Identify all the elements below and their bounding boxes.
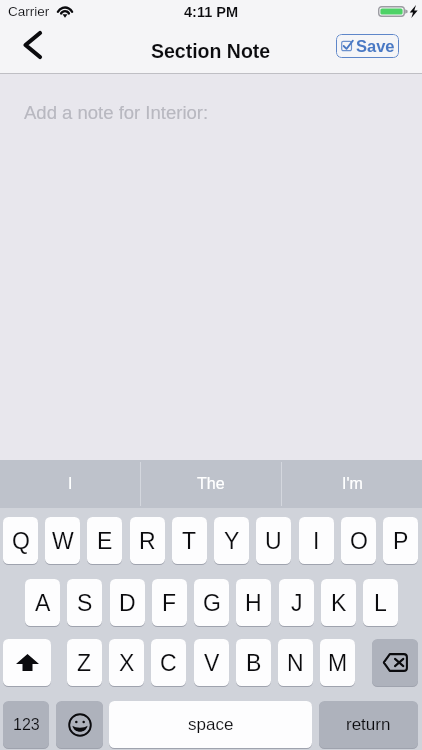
staticText: Add a note for Interior: (24, 102, 209, 123)
button[interactable]: Emoji (56, 701, 103, 749)
button[interactable]: Y (214, 517, 249, 565)
button[interactable]: K (321, 579, 356, 627)
staticText: J (291, 590, 303, 616)
button[interactable]: L (363, 579, 398, 627)
staticText: S (77, 590, 93, 616)
staticText: Save (356, 37, 395, 55)
staticText: C (160, 650, 177, 676)
staticText: D (119, 590, 136, 616)
button[interactable]: P (383, 517, 418, 565)
staticText: T (182, 528, 197, 554)
staticText: Section Note (151, 40, 271, 62)
staticText: space (188, 715, 234, 734)
button[interactable]: I (0, 460, 140, 508)
staticText: W (52, 528, 74, 554)
button[interactable]: A (25, 579, 60, 627)
staticText: Carrier (8, 4, 50, 19)
staticText: A (35, 590, 51, 616)
button[interactable]: B (236, 639, 271, 687)
button[interactable]: M (320, 639, 355, 687)
button[interactable]: U (256, 517, 291, 565)
button[interactable]: S (67, 579, 102, 627)
button[interactable]: N (278, 639, 313, 687)
staticText: 123 (13, 716, 40, 734)
button[interactable]: D (110, 579, 145, 627)
staticText: L (374, 590, 387, 616)
button[interactable]: return (319, 701, 418, 749)
staticText: N (287, 650, 304, 676)
staticText: I (68, 475, 73, 493)
button[interactable]: Shift (3, 639, 51, 687)
button[interactable]: I'm (282, 460, 422, 508)
staticText: V (204, 650, 220, 676)
staticText: Z (77, 650, 92, 676)
button[interactable]: X (109, 639, 144, 687)
staticText: The (197, 475, 225, 493)
button[interactable]: E (87, 517, 122, 565)
button[interactable]: H (236, 579, 271, 627)
staticText: H (245, 590, 262, 616)
button[interactable]: W (45, 517, 80, 565)
staticText: U (265, 528, 282, 554)
button[interactable]: Back (14, 31, 50, 71)
staticText: 4:11 PM (184, 4, 238, 20)
button[interactable]: I (299, 517, 334, 565)
button[interactable]: F (152, 579, 187, 627)
button[interactable]: G (194, 579, 229, 627)
staticText: X (119, 650, 135, 676)
button[interactable]: space (109, 701, 312, 749)
button[interactable]: Q (3, 517, 38, 565)
staticText: P (393, 528, 409, 554)
staticText: Y (224, 528, 240, 554)
staticText: O (350, 528, 368, 554)
button[interactable]: T (172, 517, 207, 565)
staticText: R (139, 528, 156, 554)
staticText: F (162, 590, 177, 616)
staticText: return (346, 715, 391, 734)
staticText: Q (12, 528, 30, 554)
button[interactable]: V (194, 639, 229, 687)
staticText: I (313, 528, 320, 554)
button[interactable]: 123 (3, 701, 49, 749)
button[interactable]: Save (336, 34, 399, 58)
staticText: B (246, 650, 262, 676)
staticText: E (97, 528, 113, 554)
button[interactable]: J (279, 579, 314, 627)
button[interactable]: O (341, 517, 376, 565)
button[interactable]: R (130, 517, 165, 565)
button[interactable]: The (141, 460, 281, 508)
button[interactable]: C (151, 639, 186, 687)
button[interactable]: Z (67, 639, 102, 687)
staticText: G (203, 590, 221, 616)
staticText: I'm (342, 475, 363, 493)
button[interactable]: Backspace (372, 639, 418, 687)
staticText: M (328, 650, 348, 676)
staticText: K (331, 590, 347, 616)
